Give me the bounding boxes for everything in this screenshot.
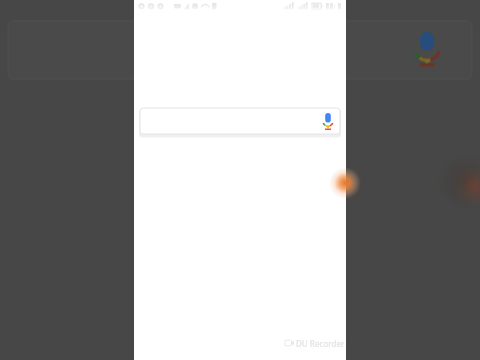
staticText: DU Recorder: [296, 338, 345, 349]
button[interactable]: Voice search: [408, 28, 446, 68]
button[interactable]: Search by voice: [310, 109, 334, 133]
button[interactable]: [140, 108, 340, 134]
